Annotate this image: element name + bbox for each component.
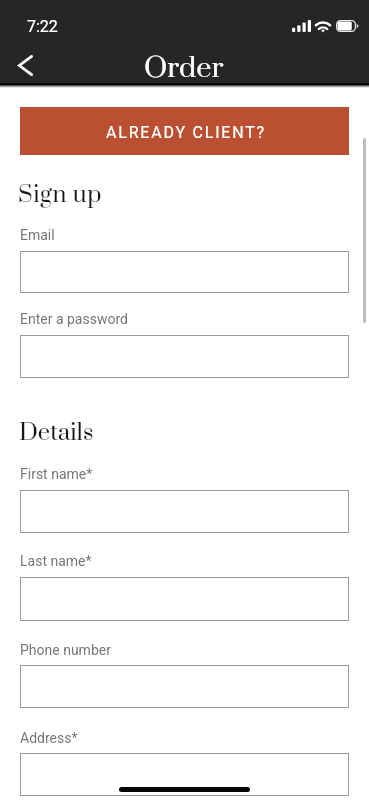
button[interactable]: [20, 577, 349, 621]
staticText: Phone number: [20, 642, 111, 658]
staticText: First name*: [20, 466, 93, 482]
button[interactable]: [20, 251, 349, 293]
staticText: Enter a password: [20, 311, 128, 327]
button[interactable]: [20, 335, 349, 378]
staticText: Details: [19, 418, 94, 448]
staticText: Last name*: [20, 553, 92, 569]
staticText: Email: [20, 227, 55, 243]
staticText: Address*: [20, 730, 78, 746]
staticText: Order: [144, 50, 224, 87]
staticText: 7:22: [27, 17, 58, 36]
staticText: ALREADY CLIENT?: [106, 123, 266, 142]
button[interactable]: [20, 665, 349, 708]
staticText: Sign up: [18, 180, 102, 210]
button[interactable]: Back: [1, 42, 49, 84]
button[interactable]: [20, 490, 349, 533]
button[interactable]: ALREADY CLIENT?: [20, 107, 349, 155]
button[interactable]: [20, 753, 349, 796]
